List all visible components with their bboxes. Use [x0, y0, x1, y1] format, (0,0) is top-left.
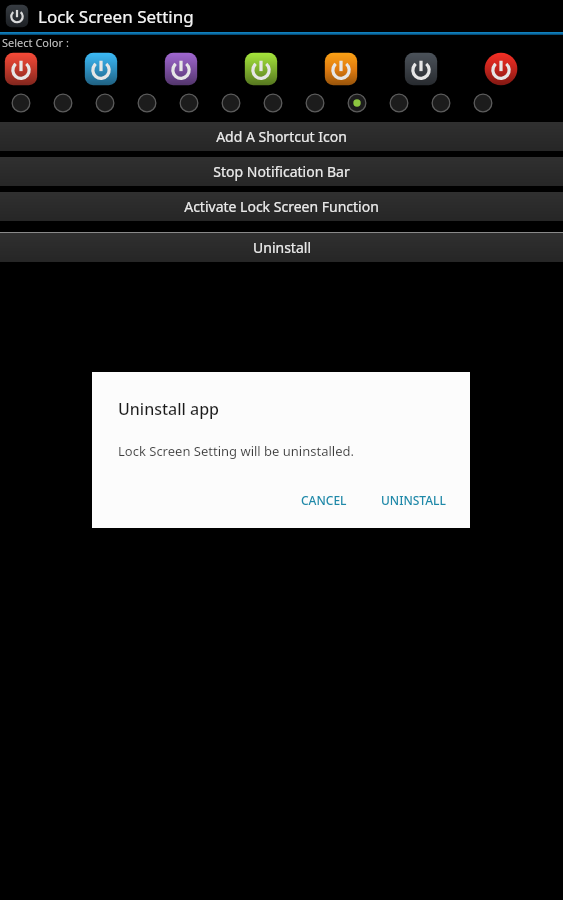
button[interactable]: Add A Shortcut Icon [0, 122, 563, 151]
button[interactable]: Select color [302, 90, 328, 116]
button[interactable]: Activate Lock Screen Function [0, 192, 563, 221]
staticText: Select Color : [2, 35, 69, 48]
button[interactable]: Select color [386, 90, 412, 116]
button[interactable]: Uninstall [0, 232, 563, 262]
button[interactable]: Select color [8, 90, 34, 116]
button[interactable]: CANCEL [291, 484, 357, 516]
button[interactable]: Select color [218, 90, 244, 116]
button[interactable]: Select color [260, 90, 286, 116]
button[interactable] [322, 50, 360, 88]
button[interactable]: Select color [50, 90, 76, 116]
staticText: Activate Lock Screen Function [184, 197, 379, 216]
button[interactable]: Stop Notification Bar [0, 157, 563, 186]
button[interactable] [82, 50, 120, 88]
staticText: Uninstall [253, 238, 311, 257]
button[interactable]: Selected color [344, 90, 370, 116]
staticText: CANCEL [301, 492, 347, 508]
button[interactable]: Select color [470, 90, 496, 116]
staticText: Add A Shortcut Icon [216, 127, 347, 146]
button[interactable] [2, 50, 40, 88]
staticText: Uninstall app [118, 398, 220, 420]
button[interactable] [162, 50, 200, 88]
button[interactable]: UNINSTALL [371, 484, 456, 516]
button[interactable]: Select color [134, 90, 160, 116]
staticText: Stop Notification Bar [213, 162, 350, 181]
staticText: UNINSTALL [381, 492, 446, 508]
staticText: Lock Screen Setting will be uninstalled. [118, 442, 354, 460]
button[interactable]: Select color [176, 90, 202, 116]
button[interactable] [402, 50, 440, 88]
button[interactable] [482, 50, 520, 88]
staticText: Lock Screen Setting [38, 5, 194, 28]
button[interactable] [242, 50, 280, 88]
button[interactable]: Select color [92, 90, 118, 116]
button[interactable]: Select color [428, 90, 454, 116]
